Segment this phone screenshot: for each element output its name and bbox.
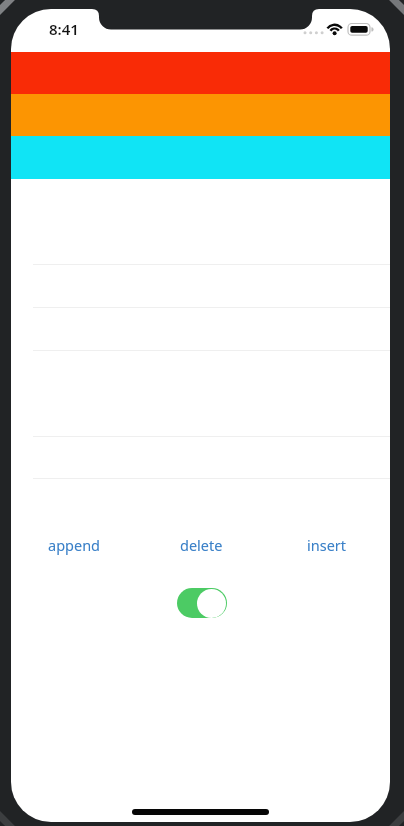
button[interactable]: append <box>11 533 138 557</box>
button[interactable]: insert <box>264 533 390 557</box>
staticText: insert <box>307 535 347 555</box>
staticText: 8:41 <box>49 19 79 38</box>
staticText: delete <box>180 535 223 555</box>
staticText: append <box>48 535 101 555</box>
button[interactable]: delete <box>138 533 264 557</box>
button[interactable] <box>177 588 227 618</box>
